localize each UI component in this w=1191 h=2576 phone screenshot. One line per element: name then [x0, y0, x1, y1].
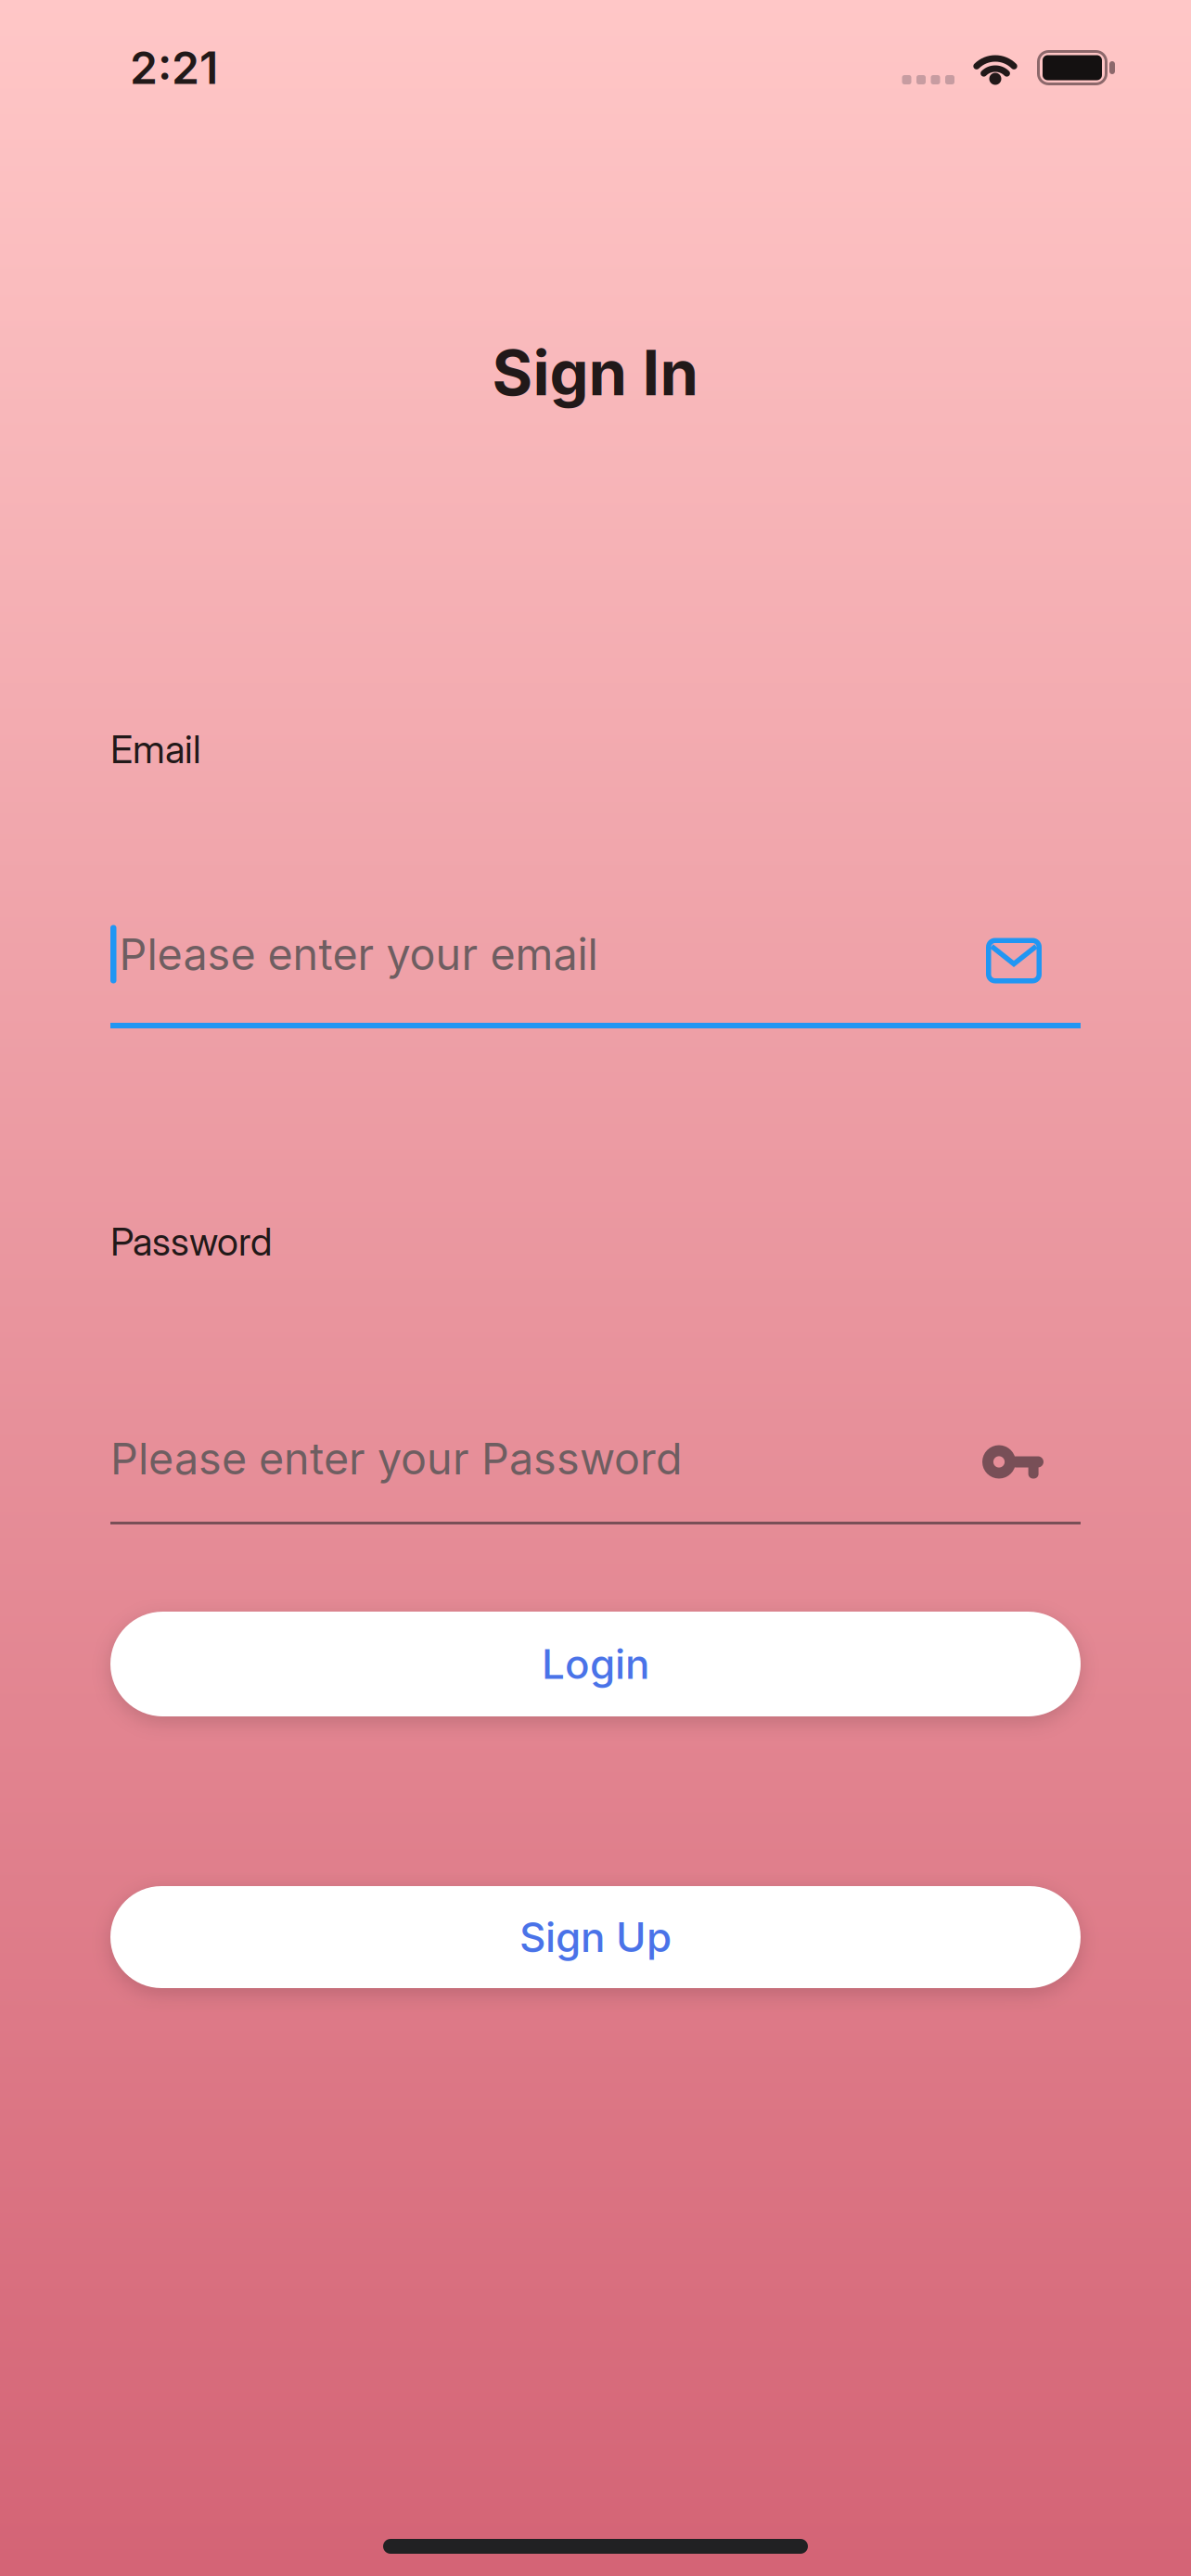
staticText: Sign In: [492, 336, 699, 409]
button[interactable]: Sign Up: [110, 1886, 1081, 1988]
button[interactable]: Login: [110, 1612, 1081, 1716]
staticText: Sign Up: [519, 1913, 672, 1961]
staticText: Please enter your Password: [110, 1433, 683, 1484]
staticText: 2:21: [130, 41, 218, 94]
staticText: Email: [110, 727, 201, 772]
staticText: Login: [542, 1640, 649, 1688]
button[interactable]: Please enter your email: [110, 924, 1081, 1028]
button[interactable]: Please enter your Password: [110, 1431, 1081, 1524]
staticText: Please enter your email: [119, 929, 598, 980]
staticText: Password: [110, 1219, 272, 1264]
